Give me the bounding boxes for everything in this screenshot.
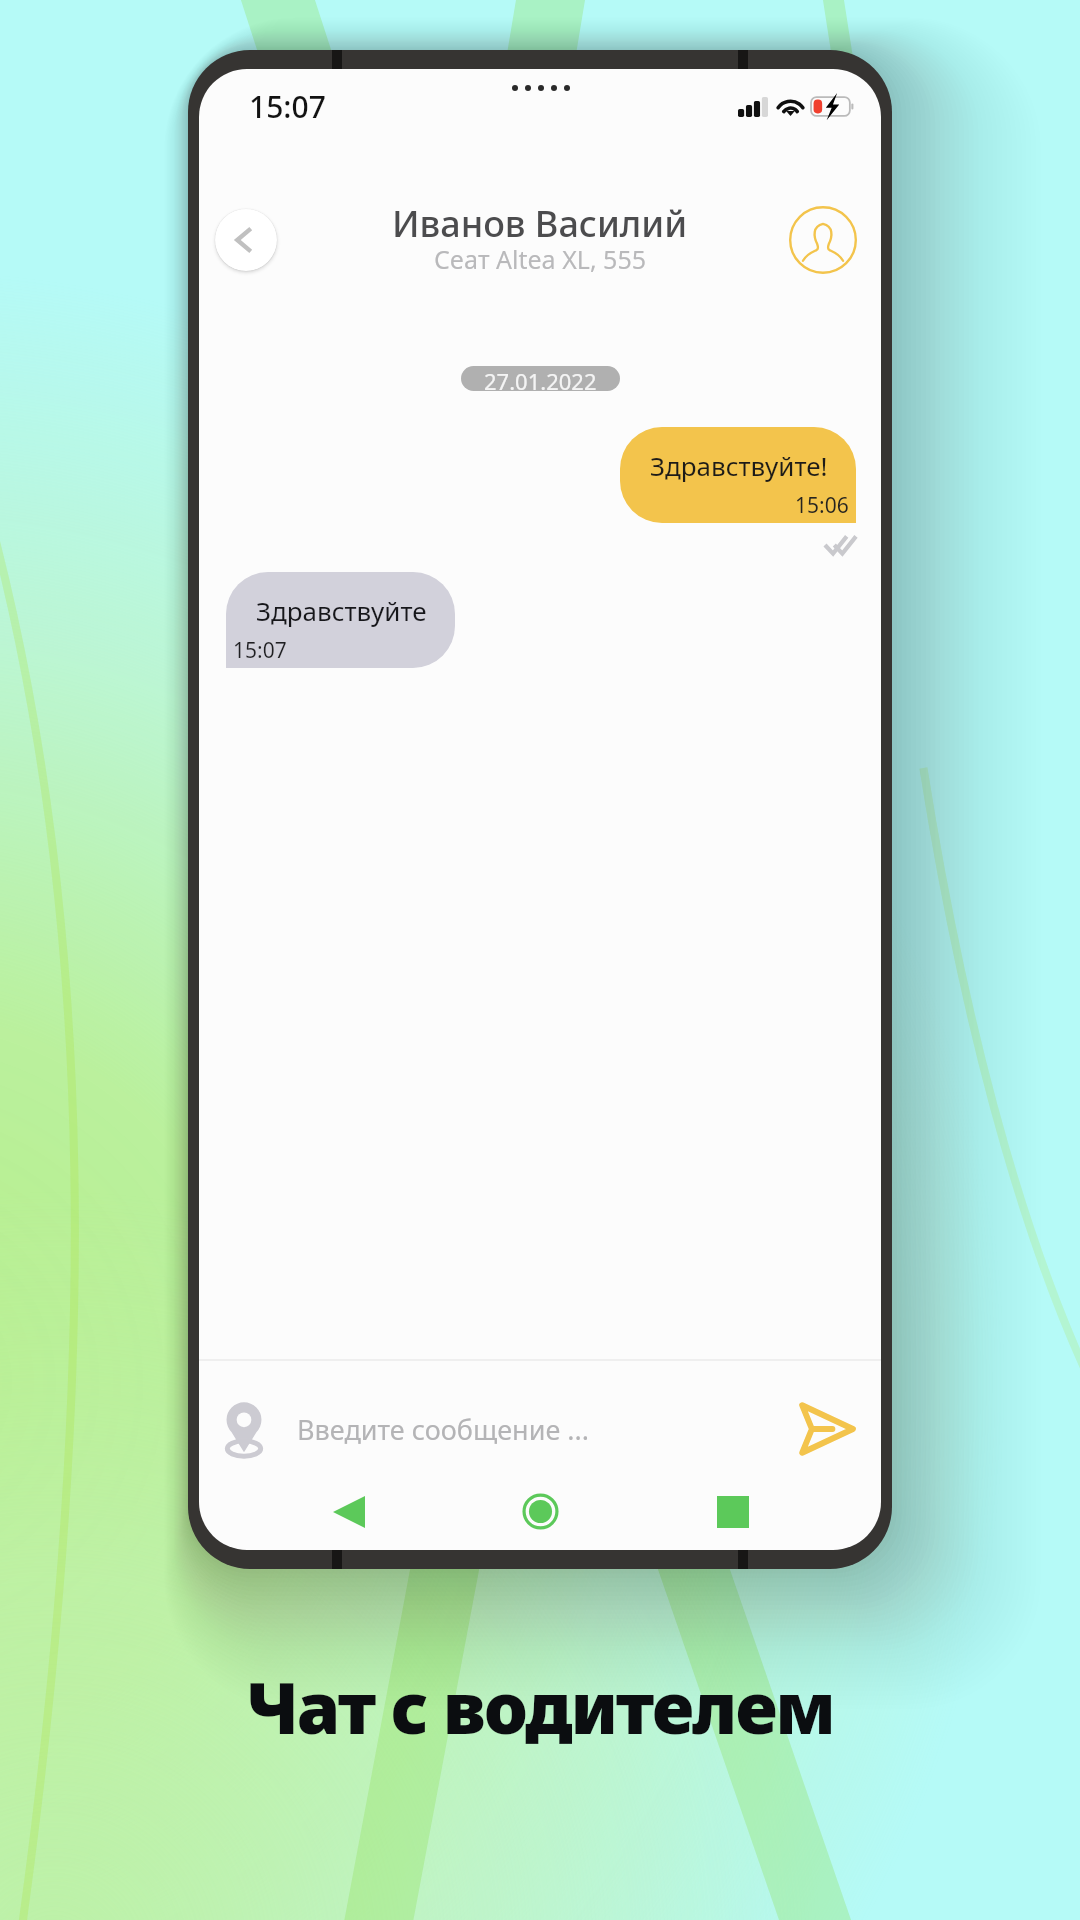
staticText: Иванов Василий (392, 199, 688, 248)
staticText: Ceaт Altea XL, 555 (434, 242, 646, 276)
staticText: Здравствуйте! (650, 448, 828, 483)
button[interactable]: Send (800, 1402, 854, 1456)
button[interactable]: Home (523, 1494, 558, 1529)
staticText: Чат с водителем (246, 1659, 834, 1754)
staticText: 15:06 (795, 491, 849, 520)
button[interactable]: Location (225, 1401, 263, 1458)
staticText: 15:07 (233, 636, 287, 665)
button[interactable]: Back (332, 1495, 366, 1529)
staticText: Здравствуйте (256, 593, 427, 628)
button[interactable]: Profile (789, 206, 857, 274)
button[interactable]: Back (215, 209, 277, 271)
staticText: 15:07 (249, 86, 326, 127)
staticText: Введите сообщение ... (297, 1411, 800, 1448)
staticText: 27.01.2022 (484, 366, 597, 391)
